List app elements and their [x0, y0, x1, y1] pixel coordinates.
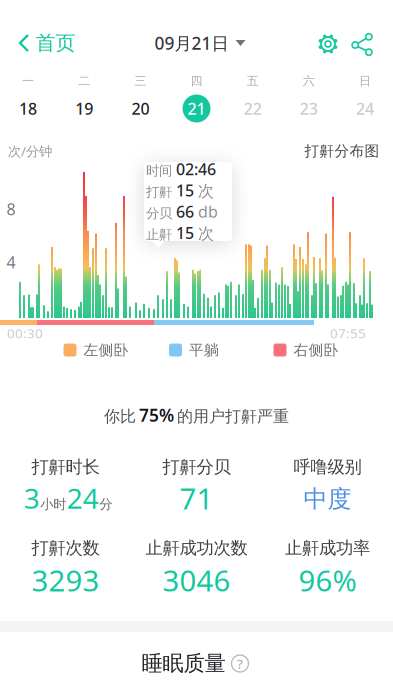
- staticText: db: [198, 201, 218, 222]
- staticText: 三: [134, 74, 146, 88]
- button[interactable]: 19: [67, 91, 101, 125]
- button[interactable]: 09月21日: [154, 31, 245, 54]
- staticText: 07:55: [330, 324, 366, 342]
- staticText: 24: [67, 479, 99, 517]
- staticText: 20: [131, 98, 149, 119]
- staticText: 3046: [162, 560, 230, 599]
- button[interactable]: 首页: [18, 31, 75, 55]
- button[interactable]: 设置: [316, 32, 340, 56]
- staticText: 71: [179, 478, 213, 517]
- staticText: 15: [176, 222, 194, 243]
- staticText: 02:46: [176, 158, 216, 180]
- staticText: 次: [198, 181, 214, 201]
- staticText: 96%: [298, 560, 356, 599]
- staticText: 呼噜级别: [293, 456, 361, 478]
- staticText: 左侧卧: [83, 341, 128, 359]
- staticText: 00:30: [7, 324, 43, 342]
- staticText: 打鼾: [146, 184, 172, 200]
- staticText: 4: [6, 251, 15, 273]
- staticText: 8: [6, 198, 15, 220]
- staticText: 时间: [146, 163, 172, 179]
- staticText: 24: [356, 98, 374, 119]
- staticText: 18: [19, 98, 37, 119]
- staticText: 75%: [139, 403, 174, 426]
- staticText: 次/分钟: [8, 142, 52, 160]
- button[interactable]: 23: [292, 91, 326, 125]
- staticText: 分贝: [146, 205, 172, 222]
- staticText: 3: [24, 479, 40, 517]
- button[interactable]: 20: [123, 91, 157, 125]
- staticText: 一: [22, 74, 34, 88]
- staticText: 打鼾次数: [31, 537, 99, 559]
- button[interactable]: 24: [348, 91, 382, 125]
- staticText: 打鼾分贝: [162, 456, 230, 478]
- staticText: 止鼾: [146, 226, 172, 243]
- staticText: 22: [244, 98, 262, 119]
- staticText: 15: [176, 180, 194, 201]
- staticText: 六: [303, 74, 315, 88]
- button[interactable]: 睡眠质量说明: [231, 655, 248, 672]
- button[interactable]: 18: [11, 91, 45, 125]
- staticText: ?: [237, 655, 243, 672]
- button[interactable]: 分享: [351, 32, 373, 56]
- staticText: 右侧卧: [293, 341, 338, 359]
- staticText: 66: [176, 201, 194, 222]
- staticText: 3293: [31, 560, 99, 599]
- staticText: 日: [359, 74, 371, 88]
- staticText: 止鼾成功次数: [145, 537, 247, 559]
- staticText: 21: [187, 98, 205, 119]
- staticText: 次: [198, 224, 214, 244]
- staticText: 首页: [35, 31, 75, 55]
- staticText: 23: [300, 98, 318, 119]
- staticText: 19: [75, 98, 93, 119]
- staticText: 的用户打鼾严重: [177, 407, 289, 426]
- staticText: 09月21日: [154, 31, 228, 54]
- staticText: 止鼾成功率: [285, 537, 370, 559]
- staticText: 平躺: [189, 341, 219, 359]
- staticText: 二: [78, 74, 90, 88]
- staticText: 打鼾分布图: [304, 142, 379, 160]
- button[interactable]: 左侧卧: [63, 341, 128, 359]
- staticText: 小时: [40, 496, 66, 513]
- staticText: 你比: [104, 407, 136, 426]
- staticText: 五: [247, 74, 259, 88]
- staticText: 打鼾时长: [31, 456, 99, 478]
- button[interactable]: 21: [179, 91, 213, 125]
- staticText: 中度: [303, 484, 351, 514]
- button[interactable]: 右侧卧: [273, 341, 338, 359]
- staticText: 睡眠质量: [141, 650, 225, 677]
- button[interactable]: 22: [236, 91, 270, 125]
- staticText: 四: [190, 74, 202, 88]
- button[interactable]: 平躺: [169, 341, 219, 359]
- staticText: 分: [99, 496, 112, 513]
